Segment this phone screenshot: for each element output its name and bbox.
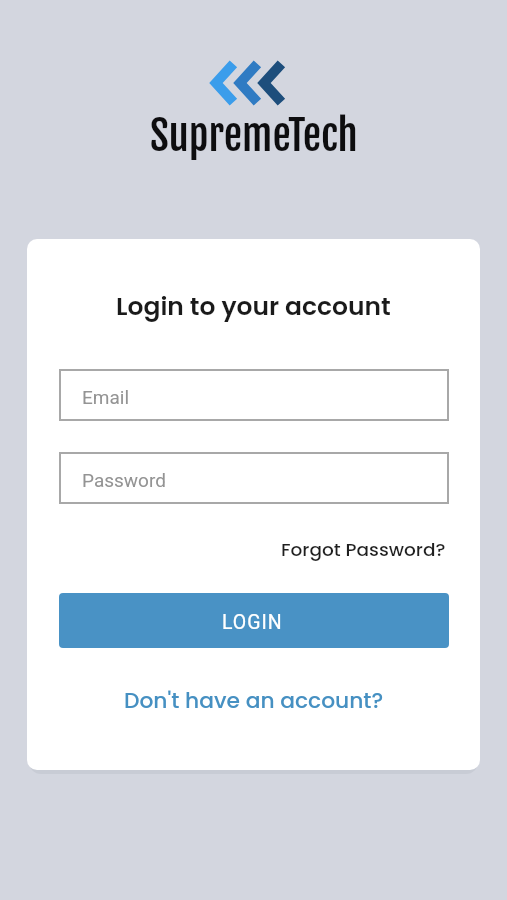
staticText: Password [82, 469, 166, 491]
staticText: SupremeTech [150, 110, 358, 162]
button[interactable]: LOGIN [59, 593, 449, 648]
staticText: Login to your account [116, 289, 391, 324]
button[interactable]: Password [59, 452, 449, 504]
button[interactable]: Don't have an account? [124, 685, 384, 716]
button[interactable]: Forgot Password? [281, 537, 446, 563]
staticText: Don't have an account? [124, 685, 384, 716]
button[interactable]: Email [59, 369, 449, 421]
staticText: Forgot Password? [281, 537, 446, 563]
staticText: LOGIN [222, 611, 283, 634]
staticText: Email [82, 386, 130, 408]
